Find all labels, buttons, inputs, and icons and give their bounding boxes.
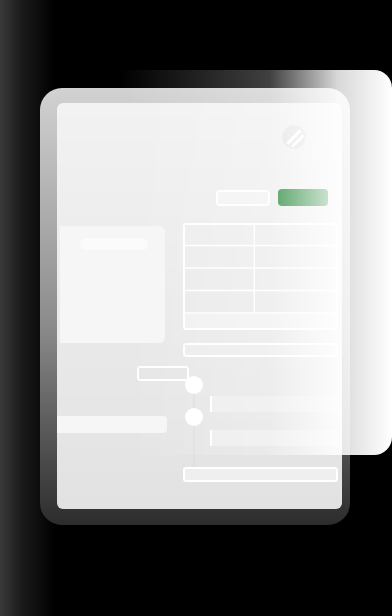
button[interactable]: Primary action: [278, 189, 328, 206]
button[interactable]: [211, 430, 338, 446]
button[interactable]: [137, 366, 189, 381]
button[interactable]: App logo: [282, 125, 306, 149]
button[interactable]: Secondary action: [216, 190, 270, 206]
button[interactable]: [183, 467, 338, 482]
button[interactable]: [183, 343, 338, 357]
button[interactable]: [211, 396, 338, 412]
button[interactable]: [183, 223, 338, 330]
